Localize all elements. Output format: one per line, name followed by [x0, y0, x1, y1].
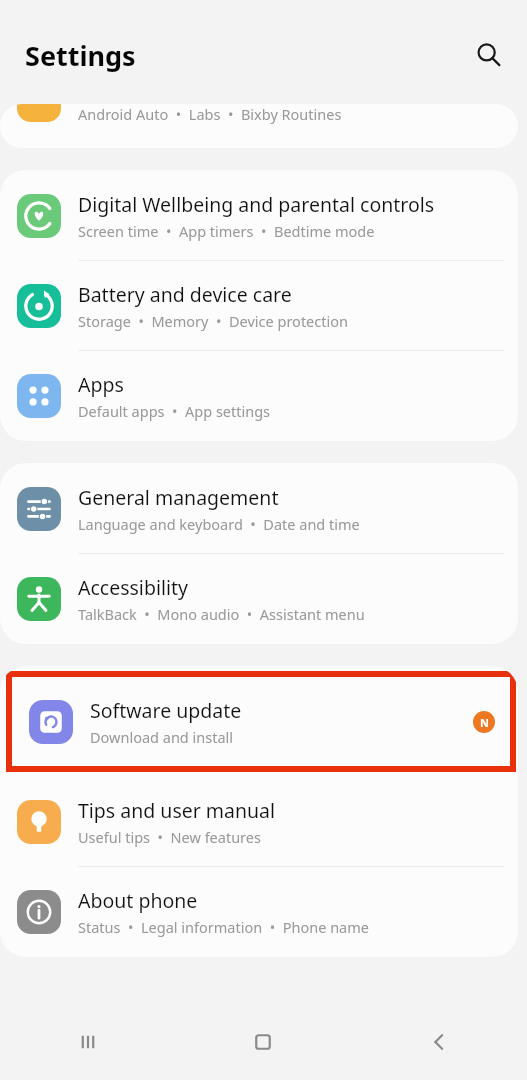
button[interactable]: Battery and device care: [0, 261, 518, 350]
staticText: Status • Legal information • Phone name: [78, 917, 369, 937]
staticText: General management: [78, 484, 279, 511]
staticText: Storage • Memory • Device protection: [78, 311, 348, 331]
button[interactable]: General management: [0, 464, 518, 553]
staticText: Settings: [25, 37, 136, 74]
staticText: Download and install: [90, 727, 234, 747]
button[interactable]: Digital Wellbeing and parental controls: [0, 171, 518, 260]
button[interactable]: Search: [465, 31, 513, 79]
button[interactable]: Tips and user manual: [0, 777, 518, 866]
staticText: Apps: [78, 371, 124, 398]
button[interactable]: Back: [351, 1004, 527, 1080]
staticText: Screen time • App timers • Bedtime mode: [78, 221, 375, 241]
button[interactable]: Home: [175, 1004, 351, 1080]
button[interactable]: About phone: [0, 867, 518, 956]
staticText: Android Auto • Labs • Bixby Routines: [78, 104, 342, 124]
staticText: Battery and device care: [78, 281, 292, 308]
staticText: Tips and user manual: [78, 797, 276, 824]
staticText: Default apps • App settings: [78, 401, 271, 421]
staticText: About phone: [78, 887, 198, 914]
staticText: Digital Wellbeing and parental controls: [78, 191, 435, 218]
button[interactable]: Accessibility: [0, 554, 518, 643]
staticText: Language and keyboard • Date and time: [78, 514, 360, 534]
button[interactable]: Apps: [0, 351, 518, 440]
button[interactable]: Android Auto • Labs • Bixby Routines: [0, 104, 518, 148]
staticText: Accessibility: [78, 574, 188, 601]
button[interactable]: Recent apps: [0, 1004, 175, 1080]
staticText: Software update: [90, 697, 242, 724]
button[interactable]: Software update: [12, 677, 510, 766]
staticText: TalkBack • Mono audio • Assistant menu: [78, 604, 365, 624]
staticText: N: [480, 715, 489, 730]
staticText: Useful tips • New features: [78, 827, 261, 847]
